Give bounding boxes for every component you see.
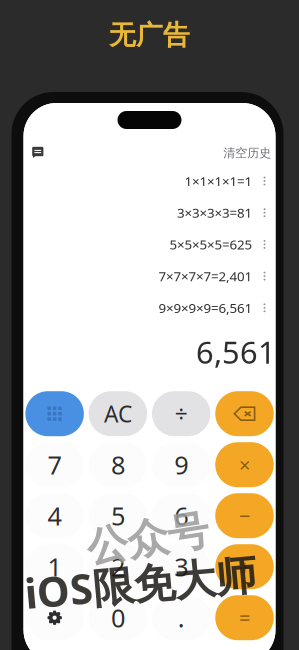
button[interactable]: ÷ (152, 391, 210, 436)
staticText: 3×3×3×3=81 (177, 204, 252, 221)
staticText: 3 (174, 550, 188, 583)
staticText: 4 (48, 499, 62, 532)
staticText: 无广告 (109, 19, 190, 51)
button[interactable]: Delete (215, 391, 274, 436)
button[interactable]: 4 (25, 493, 84, 538)
button[interactable]: 1×1×1×1=1 (25, 165, 270, 197)
staticText: 2 (111, 550, 125, 583)
staticText: 5×5×5×5=625 (169, 235, 252, 253)
button[interactable]: 9×9×9×9=6,561 (25, 292, 270, 324)
button[interactable]: − (215, 493, 274, 538)
button[interactable]: 9 (152, 442, 210, 487)
staticText: + (239, 553, 250, 580)
staticText: 公众号 (86, 514, 209, 564)
button[interactable]: = (215, 595, 274, 640)
staticText: 5 (111, 499, 125, 532)
staticText: 9×9×9×9=6,561 (158, 299, 252, 317)
button[interactable]: Settings (25, 595, 84, 640)
staticText: . (178, 601, 185, 634)
staticText: × (239, 451, 250, 478)
button[interactable]: 3×3×3×3=81 (25, 197, 270, 228)
staticText: AC (104, 399, 132, 429)
staticText: 8 (111, 448, 125, 481)
staticText: = (239, 604, 250, 631)
button[interactable]: Feedback (28, 143, 48, 163)
staticText: iOS限免大师 (24, 555, 256, 610)
staticText: 7×7×7×7=2,401 (158, 267, 252, 285)
button[interactable]: 1 (25, 544, 84, 589)
button[interactable]: × (215, 442, 274, 487)
button[interactable]: 6 (152, 493, 210, 538)
button[interactable]: 8 (89, 442, 147, 487)
staticText: 9 (174, 448, 188, 481)
staticText: 1×1×1×1=1 (184, 172, 252, 190)
staticText: 0 (111, 601, 125, 634)
button[interactable]: 5 (89, 493, 147, 538)
staticText: − (239, 502, 250, 529)
button[interactable]: 5×5×5×5=625 (25, 229, 270, 260)
staticText: 清空历史 (223, 146, 271, 160)
button[interactable]: 0 (89, 595, 147, 640)
staticText: ÷ (175, 399, 188, 429)
button[interactable]: 2 (89, 544, 147, 589)
staticText: 7 (48, 448, 62, 481)
button[interactable]: Keypad (25, 391, 84, 436)
button[interactable]: 7 (25, 442, 84, 487)
button[interactable]: 清空历史 (223, 144, 271, 162)
button[interactable]: + (215, 544, 274, 589)
staticText: 6,561 (196, 331, 276, 372)
button[interactable]: . (152, 595, 210, 640)
button[interactable]: AC (89, 391, 147, 436)
staticText: 1 (48, 550, 62, 583)
staticText: 6 (174, 499, 188, 532)
button[interactable]: 7×7×7×7=2,401 (25, 260, 270, 292)
button[interactable]: 3 (152, 544, 210, 589)
